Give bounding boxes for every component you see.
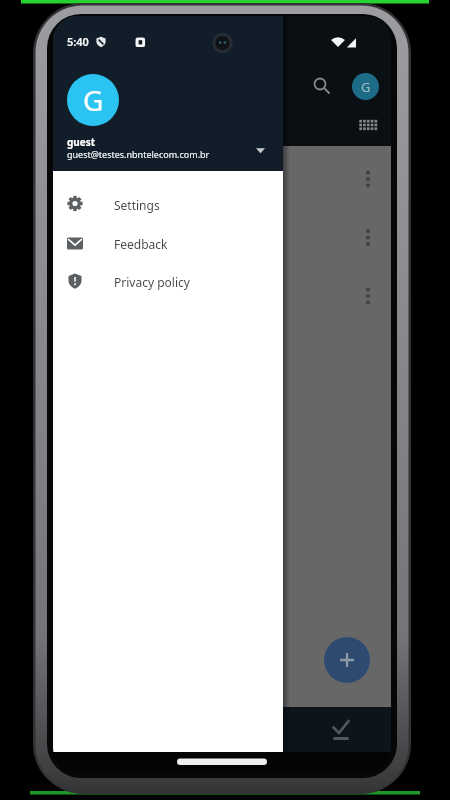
button[interactable] — [352, 110, 384, 142]
button[interactable]: G — [67, 74, 119, 126]
button[interactable]: guest — [53, 128, 283, 171]
button[interactable] — [322, 710, 360, 748]
staticText: Settings — [114, 197, 160, 213]
staticText: guest@testes.nbntelecom.com.br — [67, 148, 210, 160]
button[interactable] — [324, 637, 370, 683]
button[interactable]: G — [352, 73, 379, 100]
button[interactable] — [356, 282, 380, 310]
button[interactable]: Feedback — [53, 224, 283, 263]
button[interactable]: Privacy policy — [53, 262, 283, 301]
staticText: G — [361, 78, 371, 96]
button[interactable] — [304, 68, 340, 104]
staticText: guest — [67, 135, 96, 149]
button[interactable]: Settings — [53, 185, 283, 224]
staticText: G — [83, 81, 104, 119]
staticText: 5:40 — [67, 34, 89, 49]
staticText: Feedback — [114, 236, 168, 252]
button[interactable] — [356, 223, 380, 251]
staticText: Privacy policy — [114, 274, 190, 290]
button[interactable] — [356, 165, 380, 193]
